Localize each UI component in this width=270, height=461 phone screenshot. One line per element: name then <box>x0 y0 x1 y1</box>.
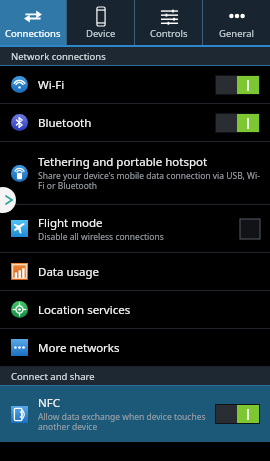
staticText: Flight mode <box>38 215 103 231</box>
button[interactable]: Location services <box>0 291 270 328</box>
button[interactable]: NFC <box>0 386 270 442</box>
staticText: Disable all wireless connections <box>38 231 164 243</box>
staticText: Connect and share <box>11 370 95 383</box>
button[interactable]: General <box>203 0 270 45</box>
staticText: Connections <box>5 27 61 40</box>
button[interactable]: On <box>216 76 259 94</box>
button[interactable]: Data usage <box>0 253 270 290</box>
staticText: Location services <box>38 302 131 318</box>
button[interactable]: Connections <box>0 0 66 45</box>
staticText: General <box>219 27 255 40</box>
staticText: Device <box>86 27 116 40</box>
staticText: More networks <box>38 340 120 356</box>
button[interactable]: Flight mode <box>0 205 270 252</box>
staticText: Bluetooth <box>38 115 92 131</box>
staticText: Network connections <box>11 50 106 63</box>
button[interactable]: On <box>216 114 259 132</box>
staticText: Controls <box>150 27 188 40</box>
button[interactable]: Controls <box>135 0 202 45</box>
button[interactable]: Flight mode checkbox <box>240 219 260 239</box>
button[interactable]: On <box>216 405 259 423</box>
button[interactable]: More networks <box>0 329 270 366</box>
staticText: Allow data exchange when device touches … <box>38 411 209 433</box>
staticText: Wi-Fi <box>38 77 65 93</box>
button[interactable]: Bluetooth <box>0 104 270 141</box>
staticText: Data usage <box>38 264 100 280</box>
button[interactable]: Open panel <box>0 187 16 213</box>
button[interactable]: Device <box>67 0 134 45</box>
staticText: Tethering and portable hotspot <box>38 154 208 170</box>
button[interactable]: Tethering and portable hotspot <box>0 142 270 204</box>
staticText: NFC <box>38 395 60 411</box>
staticText: Share your device's mobile data connecti… <box>38 170 264 192</box>
button[interactable]: Wi-Fi <box>0 66 270 103</box>
